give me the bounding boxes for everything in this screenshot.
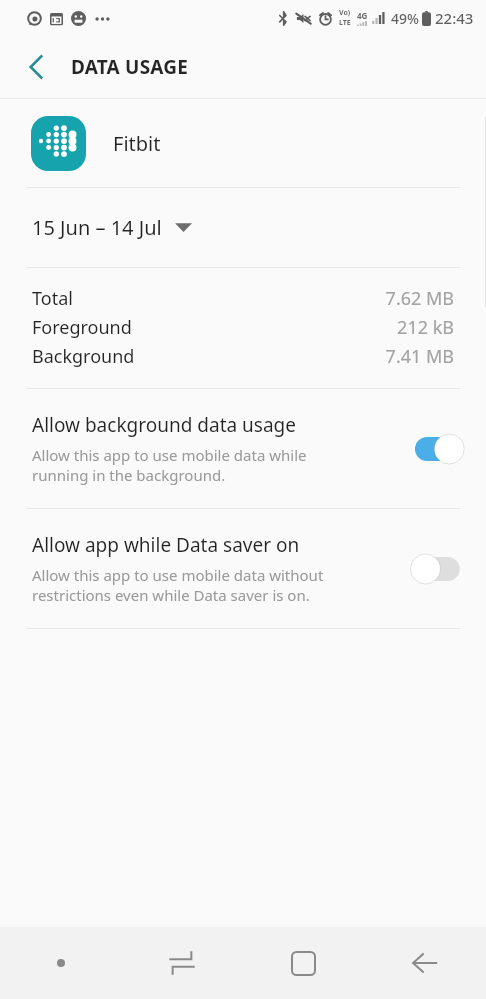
staticText: 7.62 MB <box>385 286 454 311</box>
staticText: Total <box>32 286 73 311</box>
staticText: 7.41 MB <box>385 344 454 369</box>
button[interactable]: Back <box>364 927 486 999</box>
staticText: Foreground <box>32 315 132 340</box>
button[interactable]: Recents <box>121 927 242 999</box>
staticText: 22:43 <box>435 8 474 28</box>
button[interactable]: Allow app while Data saver on <box>410 548 472 590</box>
staticText: LTE <box>339 18 351 28</box>
staticText: 212 kB <box>397 315 454 340</box>
staticText: Background <box>32 344 135 369</box>
staticText: DATA USAGE <box>71 54 189 80</box>
button[interactable]: Hide <box>0 927 121 999</box>
button[interactable]: Allow app while Data saver on <box>0 509 486 628</box>
staticText: 49% <box>391 9 419 28</box>
button[interactable]: Fitbit <box>0 99 486 187</box>
button[interactable]: 15 Jun – 14 Jul <box>0 188 486 267</box>
staticText: Allow this app to use mobile data withou… <box>32 565 324 585</box>
staticText: running in the background. <box>32 465 226 485</box>
staticText: Fitbit <box>113 130 161 157</box>
staticText: Vo) <box>339 8 351 18</box>
button[interactable]: Back <box>14 45 58 89</box>
button[interactable]: Allow background data usage <box>0 389 486 508</box>
button[interactable]: Allow background data usage <box>410 428 472 470</box>
staticText: Allow app while Data saver on <box>32 532 300 558</box>
staticText: Allow background data usage <box>32 412 297 438</box>
staticText: Allow this app to use mobile data while <box>32 445 307 465</box>
staticText: 4G <box>357 10 368 21</box>
staticText: restrictions even while Data saver is on… <box>32 585 310 605</box>
staticText: 15 Jun – 14 Jul <box>32 214 162 241</box>
button[interactable]: Home <box>242 927 364 999</box>
